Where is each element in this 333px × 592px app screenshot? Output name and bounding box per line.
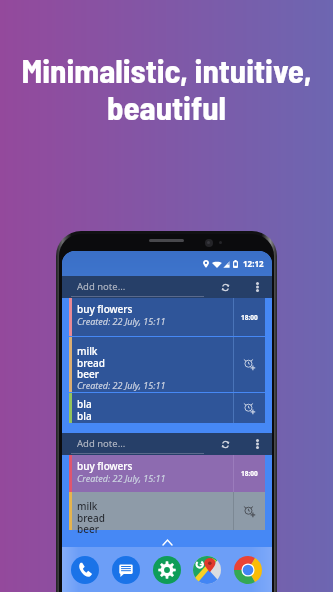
staticText: bla [77,397,92,411]
staticText: bla [77,409,92,423]
button[interactable]: Add note... [62,276,272,298]
staticText: bread [77,356,105,370]
staticText: 18:00 [241,313,258,322]
staticText: milk [77,344,98,358]
staticText: 18:00 [241,469,258,478]
staticText: Created: 22 July, 15:11 [77,379,166,391]
button[interactable]: Open app drawer [62,537,272,547]
staticText: Add note... [77,280,126,293]
staticText: beer [77,522,99,536]
button[interactable]: More options [248,435,266,453]
staticText: milk [77,499,98,513]
button[interactable]: Add note... [62,433,272,455]
staticText: buy flowers [77,459,133,473]
button[interactable]: milk [69,337,265,392]
staticText: beer [77,367,99,381]
staticText: bread [77,511,105,525]
button[interactable]: Phone [71,556,99,584]
button[interactable]: Messages [112,556,140,584]
button[interactable]: Sync [215,434,235,454]
button[interactable]: More options [248,278,266,296]
staticText: 12:12 [243,258,264,269]
button[interactable]: bla [69,393,265,423]
staticText: Created: 22 July, 15:11 [77,315,166,327]
button[interactable]: Maps [193,556,221,584]
staticText: Add note... [77,437,126,450]
button[interactable]: buy flowers [69,298,265,336]
button[interactable]: Sync [215,277,235,297]
button[interactable]: Settings [153,556,181,584]
button[interactable]: Chrome [234,556,262,584]
staticText: Minimalistic, intuitive, beautiful [0,50,333,126]
button[interactable]: milk [69,492,265,530]
button[interactable]: buy flowers [69,455,265,492]
staticText: buy flowers [77,302,133,316]
staticText: Created: 22 July, 15:11 [77,472,166,484]
